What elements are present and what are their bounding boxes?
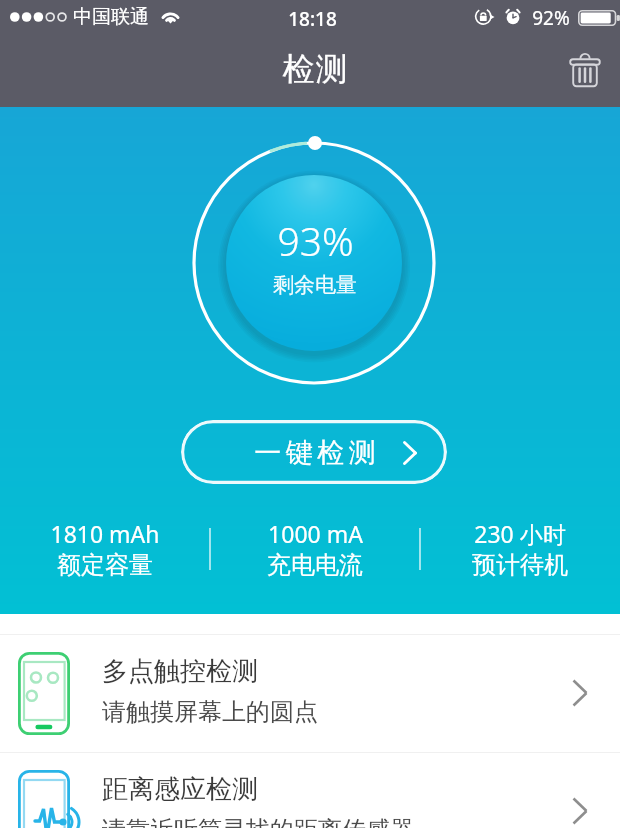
staticText: 检测: [282, 49, 348, 89]
staticText: 多点触控检测: [102, 655, 258, 688]
staticText: 距离感应检测: [102, 773, 258, 806]
staticText: 请触摸屏幕上的圆点: [102, 697, 318, 727]
staticText: 请靠近听筒寻找的距离传感器: [102, 815, 414, 828]
staticText: 充电电流: [267, 550, 363, 580]
button[interactable]: 一键检测: [181, 420, 447, 484]
staticText: 预计待机: [472, 550, 568, 580]
staticText: 一键检测: [252, 436, 378, 470]
button[interactable]: 距离感应检测: [0, 753, 620, 828]
staticText: 93%: [277, 214, 354, 267]
staticText: 18:18: [288, 6, 337, 32]
staticText: 剩余电量: [273, 272, 357, 298]
staticText: 中国联通: [73, 5, 149, 29]
staticText: 1000 mA: [268, 518, 363, 549]
button[interactable]: Delete: [560, 45, 610, 95]
staticText: 230 小时: [474, 518, 566, 549]
button[interactable]: 多点触控检测: [0, 635, 620, 752]
staticText: 1810 mAh: [50, 518, 160, 549]
staticText: 92%: [532, 5, 570, 31]
staticText: 额定容量: [57, 550, 153, 580]
